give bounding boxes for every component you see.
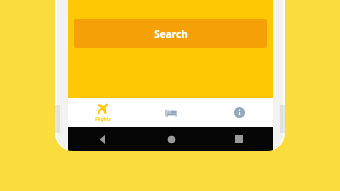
button[interactable]: Recent apps	[205, 127, 273, 151]
button[interactable]: Back	[68, 127, 137, 151]
staticText: Flights	[95, 116, 111, 123]
button[interactable]: Hotels	[137, 98, 205, 127]
button[interactable]: Info	[205, 98, 273, 127]
button[interactable]: Search	[74, 19, 267, 48]
button[interactable]: Flights	[68, 98, 137, 127]
staticText: Search	[154, 27, 188, 41]
button[interactable]: Home	[137, 127, 205, 151]
